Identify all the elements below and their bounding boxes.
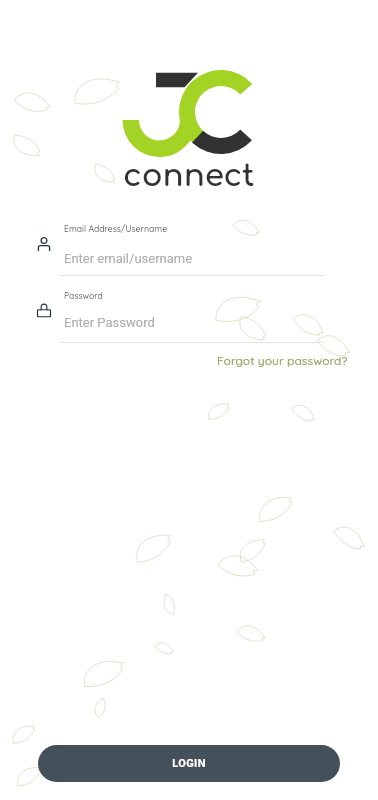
- staticText: LOGIN: [172, 757, 206, 770]
- staticText: Email Address/Username: [64, 223, 168, 234]
- staticText: connect: [123, 159, 255, 194]
- staticText: Enter Password: [64, 315, 155, 330]
- button[interactable]: LOGIN: [38, 745, 340, 782]
- staticText: Enter email/username: [64, 251, 193, 266]
- button[interactable]: Email address: [30, 231, 57, 257]
- staticText: Forgot your password?: [217, 353, 348, 368]
- button[interactable]: Enter Password: [60, 312, 324, 344]
- button[interactable]: Password: [30, 297, 57, 323]
- button[interactable]: Enter email/username: [60, 248, 324, 280]
- button[interactable]: Forgot your password?: [214, 350, 350, 370]
- staticText: Password: [64, 290, 103, 301]
